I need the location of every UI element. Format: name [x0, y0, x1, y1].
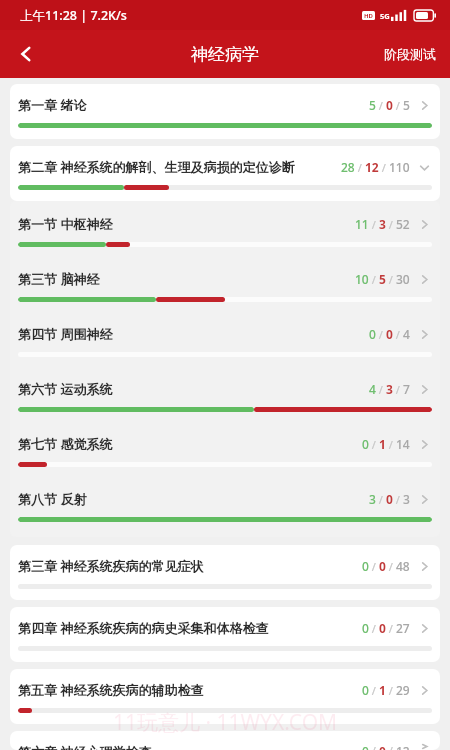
staticText: / — [386, 621, 396, 636]
button[interactable]: 第六章 神经心理学检查 — [10, 731, 440, 750]
staticText: 48 — [396, 558, 410, 574]
button[interactable]: 第一章 绪论 — [10, 84, 440, 139]
staticText: / — [386, 683, 396, 698]
staticText: / — [369, 683, 379, 698]
staticText: 第四节 周围神经 — [18, 325, 363, 343]
staticText: / — [369, 621, 379, 636]
staticText: 5G — [380, 11, 390, 21]
staticText: 0 — [379, 743, 386, 750]
button[interactable]: 第八节 反射 — [10, 478, 440, 533]
staticText: / — [393, 327, 403, 342]
staticText: 阶段测试 — [384, 46, 436, 62]
staticText: 0 — [362, 682, 369, 698]
staticText: / — [376, 98, 386, 113]
staticText: / — [376, 492, 386, 507]
staticText: 0 — [386, 491, 393, 507]
staticText: 1 — [379, 682, 386, 698]
staticText: 神经病学 — [191, 44, 259, 65]
staticText: 29 — [396, 682, 410, 698]
button[interactable]: 第二章 神经系统的解剖、生理及病损的定位诊断 — [10, 146, 440, 201]
staticText: 第五章 神经系统疾病的辅助检查 — [18, 681, 356, 699]
staticText: 0 — [362, 558, 369, 574]
staticText: 3 — [403, 491, 410, 507]
staticText: 第三节 脑神经 — [18, 270, 349, 288]
button[interactable]: 第四节 周围神经 — [10, 313, 440, 368]
staticText: / — [386, 559, 396, 574]
staticText: / — [379, 160, 389, 175]
staticText: 第八节 反射 — [18, 490, 363, 508]
staticText: 上午11:28 | 7.2K/s — [20, 7, 127, 24]
staticText: 0 — [386, 97, 393, 113]
staticText: 第一节 中枢神经 — [18, 215, 349, 233]
staticText: 0 — [369, 326, 376, 342]
button[interactable]: 阶段测试 — [370, 30, 450, 78]
staticText: 4 — [403, 326, 410, 342]
staticText: / — [369, 743, 379, 750]
staticText: 0 — [362, 743, 369, 750]
staticText: 第六节 运动系统 — [18, 380, 363, 398]
staticText: 3 — [379, 216, 386, 232]
staticText: 14 — [396, 436, 410, 452]
staticText: / — [386, 437, 396, 452]
staticText: 0 — [362, 620, 369, 636]
staticText: / — [369, 559, 379, 574]
staticText: 4 — [369, 381, 376, 397]
button[interactable]: 第六节 运动系统 — [10, 368, 440, 423]
staticText: 110 — [389, 159, 410, 175]
button[interactable]: 第一节 中枢神经 — [10, 203, 440, 258]
button[interactable]: 第七节 感觉系统 — [10, 423, 440, 478]
staticText: 5 — [379, 271, 386, 287]
staticText: 第一章 绪论 — [18, 96, 363, 114]
staticText: / — [376, 327, 386, 342]
staticText: / — [386, 272, 396, 287]
button[interactable]: 第五章 神经系统疾病的辅助检查 — [10, 669, 440, 724]
staticText: 1 — [379, 436, 386, 452]
staticText: / — [376, 382, 386, 397]
staticText: 12 — [396, 743, 410, 750]
staticText: 5 — [403, 97, 410, 113]
staticText: / — [386, 217, 396, 232]
staticText: / — [393, 98, 403, 113]
staticText: / — [369, 217, 379, 232]
staticText: / — [369, 437, 379, 452]
staticText: 第二章 神经系统的解剖、生理及病损的定位诊断 — [18, 158, 335, 176]
staticText: 11玩意儿 · 11WYX.COM — [0, 708, 450, 737]
button[interactable]: 第三章 神经系统疾病的常见症状 — [10, 545, 440, 600]
staticText: 3 — [386, 381, 393, 397]
staticText: 3 — [369, 491, 376, 507]
staticText: / — [369, 272, 379, 287]
staticText: 第三章 神经系统疾病的常见症状 — [18, 557, 356, 575]
staticText: 11 — [355, 216, 369, 232]
staticText: 27 — [396, 620, 410, 636]
staticText: 10 — [355, 271, 369, 287]
staticText: / — [393, 382, 403, 397]
staticText: 第六章 神经心理学检查 — [18, 743, 356, 750]
staticText: 0 — [362, 436, 369, 452]
staticText: / — [393, 492, 403, 507]
staticText: 0 — [379, 620, 386, 636]
staticText: 52 — [396, 216, 410, 232]
staticText: 第四章 神经系统疾病的病史采集和体格检查 — [18, 619, 356, 637]
staticText: 30 — [396, 271, 410, 287]
staticText: 第七节 感觉系统 — [18, 435, 356, 453]
staticText: 7 — [403, 381, 410, 397]
staticText: / — [355, 160, 365, 175]
staticText: / — [386, 743, 396, 750]
button[interactable]: 第三节 脑神经 — [10, 258, 440, 313]
button[interactable]: 第四章 神经系统疾病的病史采集和体格检查 — [10, 607, 440, 662]
staticText: 12 — [365, 159, 379, 175]
staticText: 5 — [369, 97, 376, 113]
staticText: HD — [364, 12, 373, 20]
staticText: 0 — [386, 326, 393, 342]
staticText: 28 — [341, 159, 355, 175]
staticText: 0 — [379, 558, 386, 574]
button[interactable]: Back — [0, 30, 52, 78]
